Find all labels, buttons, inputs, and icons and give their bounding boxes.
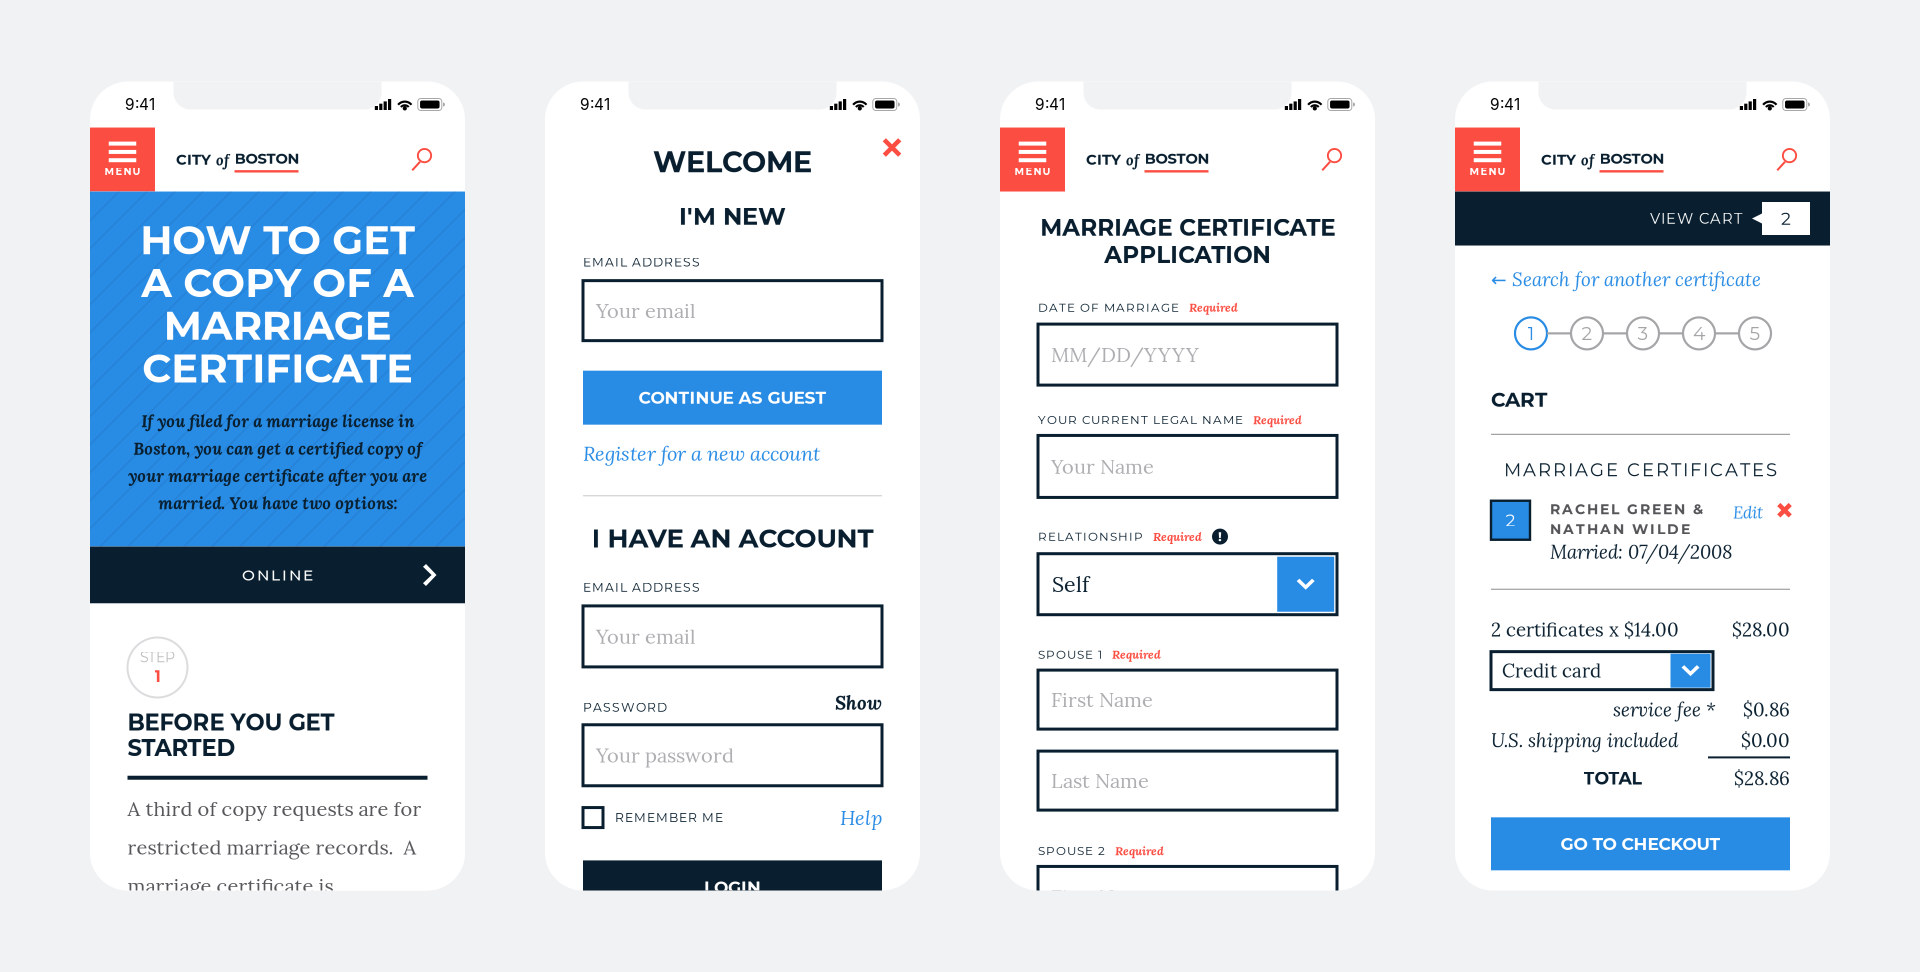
staticText: 9:41 <box>580 95 610 114</box>
staticText: BOSTON <box>234 150 299 167</box>
button[interactable]: Close <box>872 127 912 167</box>
button[interactable]: Register for a new account <box>583 441 820 466</box>
staticText: If you filed for a marriage license in B… <box>128 410 427 514</box>
staticText: Your email <box>596 624 695 649</box>
staticText: $28.86 <box>1734 766 1790 790</box>
staticText: 9:41 <box>1490 95 1520 114</box>
button[interactable]: Remove item <box>1775 501 1794 520</box>
button[interactable]: LOGIN <box>583 860 882 914</box>
staticText: Last Name <box>1051 768 1149 793</box>
staticText: GO TO CHECKOUT <box>1560 833 1720 854</box>
staticText: of <box>1126 151 1139 170</box>
staticText: TOTAL <box>1583 768 1641 789</box>
staticText: M E N U <box>1469 165 1505 177</box>
staticText: 4 <box>1693 322 1705 345</box>
staticText: CONTINUE AS GUEST <box>638 387 826 408</box>
staticText: R E M E M B E R M E <box>615 810 723 825</box>
staticText: M E N U <box>1014 165 1050 177</box>
staticText: Credit card <box>1502 659 1601 683</box>
button[interactable]: Search <box>1766 127 1810 191</box>
button[interactable]: Menu <box>1455 127 1520 191</box>
button[interactable]: V I E W C A R T <box>1455 191 1830 245</box>
staticText: $28.00 <box>1732 618 1790 642</box>
staticText: E M A I L A D D R E S S <box>583 580 700 595</box>
button[interactable]: ← Search for another certificate <box>1491 267 1761 291</box>
staticText: CITY <box>1541 151 1576 168</box>
staticText: 2 <box>1505 510 1515 531</box>
staticText: Married: 07/04/2008 <box>1550 540 1733 564</box>
staticText: First Name <box>1051 884 1153 910</box>
staticText: STEP <box>140 649 175 666</box>
button[interactable]: Help <box>840 805 882 830</box>
staticText: 2 certificates x $14.00 <box>1491 618 1679 642</box>
staticText: WELCOME <box>653 144 812 179</box>
staticText: S P O U S E 2 <box>1038 843 1105 858</box>
staticText: CART <box>1491 387 1547 412</box>
staticText: E M A I L A D D R E S S <box>583 255 700 270</box>
staticText: A third of copy requests are for restric… <box>127 796 422 972</box>
staticText: I HAVE AN ACCOUNT <box>591 522 873 554</box>
staticText: D A T E O F M A R R I A G E <box>1038 300 1179 315</box>
staticText: Required <box>1253 412 1302 427</box>
staticText: ← Search for another certificate <box>1491 267 1761 291</box>
staticText: ! <box>1218 528 1222 545</box>
staticText: Edit <box>1733 502 1763 523</box>
staticText: 3 <box>1637 322 1648 345</box>
staticText: Required <box>1112 647 1161 662</box>
staticText: Register for a new account <box>583 441 820 466</box>
staticText: 1 <box>154 667 160 686</box>
button[interactable]: Menu <box>90 127 155 191</box>
staticText: of <box>216 151 229 170</box>
staticText: service fee * <box>1613 698 1716 721</box>
button[interactable]: CONTINUE AS GUEST <box>583 371 882 425</box>
button[interactable]: Menu <box>1000 127 1065 191</box>
button[interactable]: Search <box>1311 127 1355 191</box>
staticText: S P O U S E 1 <box>1038 647 1102 662</box>
staticText: Required <box>1115 843 1164 858</box>
staticText: HOW TO GET A COPY OF A MARRIAGE CERTIFIC… <box>140 215 415 392</box>
staticText: Y O U R C U R R E N T L E G A L N A M E <box>1038 412 1243 427</box>
staticText: 5 <box>1749 322 1760 345</box>
staticText: I'M NEW <box>679 201 786 231</box>
staticText: BEFORE YOU GET STARTED <box>127 708 334 762</box>
staticText: U.S. shipping included <box>1491 728 1678 752</box>
button[interactable]: GO TO CHECKOUT <box>1491 817 1790 870</box>
staticText: BOSTON <box>1599 150 1664 167</box>
staticText: Your Name <box>1051 454 1154 479</box>
staticText: MM/DD/YYYY <box>1051 342 1199 367</box>
staticText: M E N U <box>104 165 140 177</box>
staticText: M A R R I A G E C E R T I F I C A T E S <box>1504 459 1777 481</box>
staticText: 9:41 <box>125 95 155 114</box>
button[interactable]: R E M E M B E R M E <box>583 808 723 828</box>
staticText: Required <box>1189 300 1238 315</box>
button[interactable]: O N L I N E <box>90 546 465 603</box>
staticText: R A C H E L G R E E N & N A T H A N W I … <box>1550 501 1703 538</box>
staticText: 9:41 <box>1035 95 1065 114</box>
staticText: O N L I N E <box>242 566 313 584</box>
button[interactable]: Edit <box>1733 502 1763 523</box>
staticText: LOGIN <box>704 877 761 898</box>
staticText: Required <box>1153 529 1202 544</box>
staticText: Help <box>840 805 882 830</box>
staticText: Your email <box>596 298 695 323</box>
staticText: $0.86 <box>1743 698 1790 721</box>
staticText: 2 <box>1581 322 1592 345</box>
staticText: CITY <box>1086 151 1121 168</box>
staticText: P A S S W O R D <box>583 700 667 715</box>
staticText: First Name <box>1051 687 1153 712</box>
staticText: 1 <box>1527 322 1534 345</box>
staticText: R E L A T I O N S H I P <box>1038 529 1143 544</box>
staticText: Self <box>1052 571 1089 598</box>
button[interactable]: Search <box>401 127 445 191</box>
staticText: of <box>1581 151 1594 170</box>
staticText: CITY <box>176 151 211 168</box>
staticText: V I E W C A R T <box>1650 210 1742 227</box>
staticText: BOSTON <box>1144 150 1209 167</box>
staticText: 2 <box>1781 208 1791 229</box>
staticText: Show <box>835 691 882 715</box>
button[interactable]: Show <box>835 691 882 715</box>
staticText: Your password <box>596 742 734 768</box>
staticText: $0.00 <box>1741 728 1790 752</box>
staticText: MARRIAGE CERTIFICATE APPLICATION <box>1040 213 1335 269</box>
